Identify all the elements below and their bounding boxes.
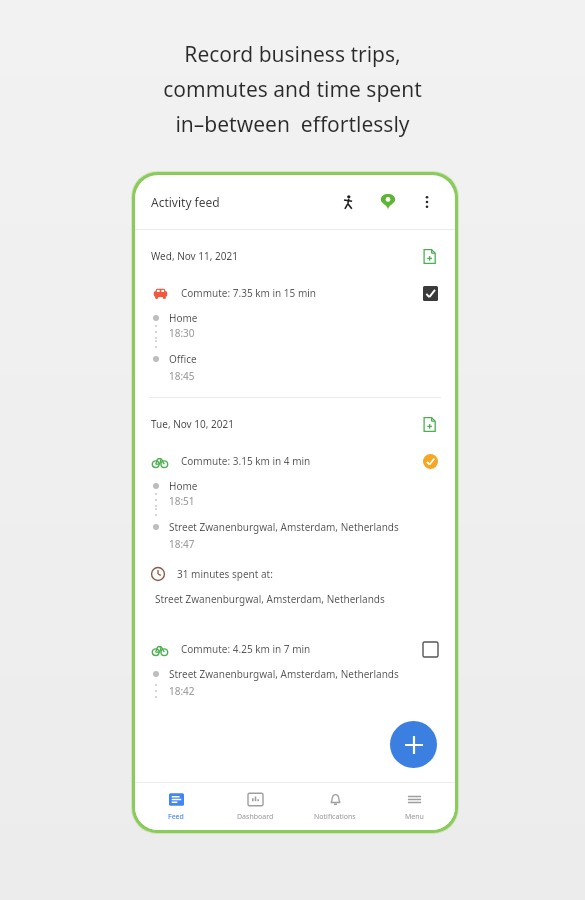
staticText: 18:47 xyxy=(169,537,195,551)
button[interactable]: Commute: 7.35 km in 15 min xyxy=(135,270,455,304)
button[interactable]: Menu xyxy=(375,783,453,830)
button[interactable]: Add activity xyxy=(390,721,437,768)
staticText: Street Zwanenburgwal, Amsterdam, Netherl… xyxy=(155,592,385,606)
button[interactable]: Trip approved xyxy=(422,285,439,302)
staticText: Tue, Nov 10, 2021 xyxy=(151,417,234,431)
button[interactable]: Wed, Nov 11, 2021 xyxy=(135,230,455,270)
staticText: Office xyxy=(169,352,197,366)
staticText: 18:42 xyxy=(169,684,195,698)
staticText: Street Zwanenburgwal, Amsterdam, Netherl… xyxy=(169,520,399,534)
button[interactable]: Notifications xyxy=(296,783,374,830)
staticText: Street Zwanenburgwal, Amsterdam, Netherl… xyxy=(169,667,399,681)
button[interactable]: Tue, Nov 10, 2021 xyxy=(135,398,455,438)
staticText: in–between effortlessly xyxy=(175,110,410,139)
staticText: commutes and time spent xyxy=(163,75,422,104)
button[interactable]: Commute: 3.15 km in 4 min xyxy=(135,438,455,472)
staticText: Home xyxy=(169,479,198,493)
button[interactable]: Location xyxy=(375,189,401,215)
button[interactable]: Feed xyxy=(137,783,215,830)
button[interactable]: Trip confirmed xyxy=(422,453,439,470)
staticText: Wed, Nov 11, 2021 xyxy=(151,249,238,263)
staticText: Commute: 3.15 km in 4 min xyxy=(181,454,311,468)
staticText: Dashboard xyxy=(237,812,274,822)
staticText: Notifications xyxy=(314,812,356,822)
staticText: 18:30 xyxy=(169,326,195,340)
staticText: Menu xyxy=(405,812,424,822)
staticText: 18:45 xyxy=(169,369,195,383)
staticText: 18:51 xyxy=(169,494,195,508)
staticText: Feed xyxy=(168,812,184,822)
button[interactable]: 31 minutes spent at: xyxy=(135,565,455,583)
staticText: Commute: 7.35 km in 15 min xyxy=(181,286,317,300)
staticText: Home xyxy=(169,311,198,325)
button[interactable]: More options xyxy=(415,190,439,214)
staticText: Record business trips, xyxy=(184,40,401,69)
button[interactable]: Select trip xyxy=(422,641,439,658)
staticText: Commute: 4.25 km in 7 min xyxy=(181,642,311,656)
other: Export day xyxy=(419,414,439,434)
staticText: Activity feed xyxy=(151,194,220,210)
button[interactable]: Walking activity xyxy=(335,189,361,215)
button[interactable]: Dashboard xyxy=(216,783,294,830)
staticText: 31 minutes spent at: xyxy=(177,567,273,581)
button[interactable]: Commute: 4.25 km in 7 min xyxy=(135,626,455,660)
other: Export day xyxy=(419,246,439,266)
